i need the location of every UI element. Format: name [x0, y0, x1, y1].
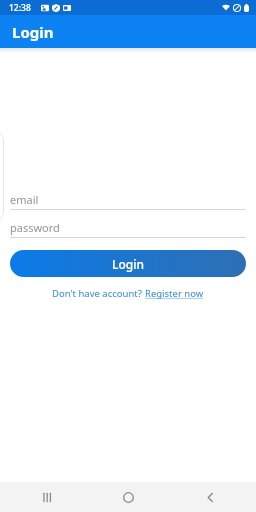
staticText: Don't have account? — [52, 287, 145, 300]
button[interactable]: Login — [10, 250, 246, 277]
staticText: email — [10, 192, 39, 207]
staticText: 12:38 — [9, 2, 31, 14]
button[interactable]: Don't have account? — [10, 287, 246, 300]
staticText: Login — [12, 22, 54, 42]
staticText: Login — [112, 256, 144, 272]
button[interactable]: Back — [175, 482, 245, 512]
button[interactable]: Home — [93, 482, 163, 512]
button[interactable]: password — [10, 218, 246, 238]
button[interactable]: email — [10, 190, 246, 210]
staticText: password — [10, 220, 60, 235]
staticText: Register now — [145, 287, 204, 300]
button[interactable]: Recent apps — [12, 482, 82, 512]
